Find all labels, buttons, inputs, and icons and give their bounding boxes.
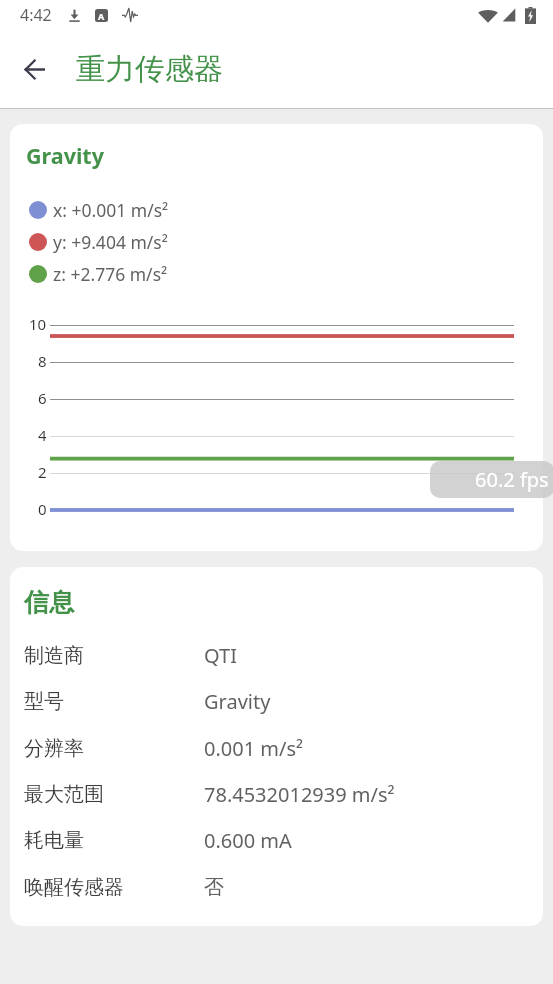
staticText: Gravity [26,141,104,170]
button[interactable]: 型号 [10,678,543,724]
button[interactable]: 最大范围 [10,771,543,817]
staticText: 型号 [24,689,64,714]
button[interactable]: Frame rate [430,461,553,498]
staticText: 8 [38,351,47,371]
button[interactable]: 分辨率 [10,725,543,771]
staticText: y: +9.404 m/s² [53,230,168,254]
staticText: 0.001 m/s² [204,735,304,762]
staticText: Gravity [204,688,271,715]
button[interactable]: 耗电量 [10,817,543,863]
staticText: 2 [38,462,47,482]
staticText: QTI [204,642,237,669]
staticText: z: +2.776 m/s² [53,262,168,286]
staticText: 制造商 [24,643,84,668]
staticText: 78.4532012939 m/s² [204,781,395,808]
staticText: 60.2 fps [475,466,549,493]
staticText: 否 [204,875,224,900]
button[interactable]: Back [11,45,59,93]
staticText: 4:42 [20,4,52,26]
button[interactable]: Gravity [10,124,543,551]
staticText: x: +0.001 m/s² [53,198,169,222]
staticText: 分辨率 [24,736,84,761]
staticText: 0 [38,499,47,519]
staticText: 4 [38,425,47,445]
staticText: 耗电量 [24,828,84,853]
staticText: 最大范围 [24,782,104,807]
staticText: A [98,10,105,22]
staticText: 唤醒传感器 [24,875,124,900]
staticText: 重力传感器 [76,51,224,88]
button[interactable]: 制造商 [10,632,543,678]
staticText: 信息 [24,587,74,618]
staticText: 6 [38,388,47,408]
button[interactable]: 唤醒传感器 [10,864,543,910]
staticText: 0.600 mA [204,827,292,854]
staticText: 10 [29,314,47,334]
